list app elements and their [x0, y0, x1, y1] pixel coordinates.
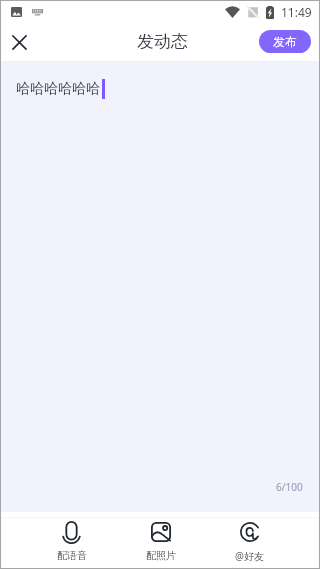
- button[interactable]: 发布: [259, 30, 311, 53]
- button[interactable]: 配语音: [27, 518, 116, 568]
- staticText: 发动态: [137, 31, 188, 52]
- staticText: 发布: [273, 34, 297, 49]
- button[interactable]: @好友: [205, 518, 294, 568]
- staticText: @好友: [235, 549, 264, 563]
- staticText: 配语音: [57, 549, 87, 562]
- staticText: 配照片: [146, 549, 176, 562]
- staticText: 6/100: [276, 480, 303, 494]
- staticText: 哈哈哈哈哈哈: [16, 80, 100, 98]
- button[interactable]: 关闭: [4, 27, 34, 57]
- staticText: 11:49: [281, 4, 312, 20]
- button[interactable]: 动态内容输入框: [1, 61, 319, 512]
- button[interactable]: 配照片: [116, 518, 205, 568]
